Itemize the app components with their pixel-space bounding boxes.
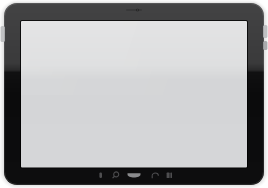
button[interactable]: Home [126, 168, 142, 184]
button[interactable]: Recent apps [162, 168, 178, 184]
button[interactable]: Tablet screen [21, 21, 247, 167]
button[interactable]: Back [147, 168, 163, 184]
button[interactable]: Search [109, 168, 125, 184]
button[interactable]: Menu [92, 168, 108, 184]
